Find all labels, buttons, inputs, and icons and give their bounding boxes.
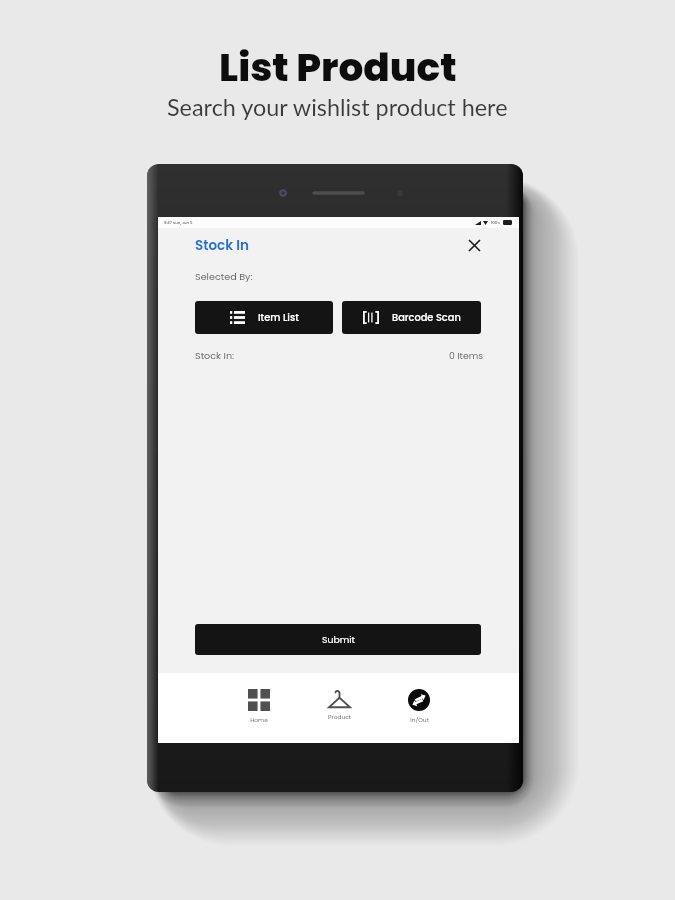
staticText: Home [250,716,268,724]
button[interactable]: In/Out [379,673,459,743]
button[interactable]: Product [299,673,379,743]
staticText: 0 Items [449,349,484,362]
staticText: Search your wishlist product here [167,93,508,121]
staticText: List Product [219,40,457,95]
staticText: In/Out [410,716,429,724]
button[interactable]: Home [219,673,299,743]
staticText: Item List [258,311,299,325]
button[interactable]: Submit [195,624,481,655]
staticText: Stock In: [195,349,235,362]
staticText: Stock In [195,236,249,255]
staticText: Barcode Scan [392,311,461,325]
staticText: 9:47 Sun, Jun 5 [164,220,193,225]
button[interactable]: Close [464,235,484,255]
button[interactable]: Item List [195,301,333,334]
staticText: 100% [491,220,501,225]
staticText: Product [328,713,351,721]
button[interactable]: Barcode Scan [342,301,481,334]
staticText: Selected By: [195,270,253,283]
staticText: Submit [322,633,355,646]
